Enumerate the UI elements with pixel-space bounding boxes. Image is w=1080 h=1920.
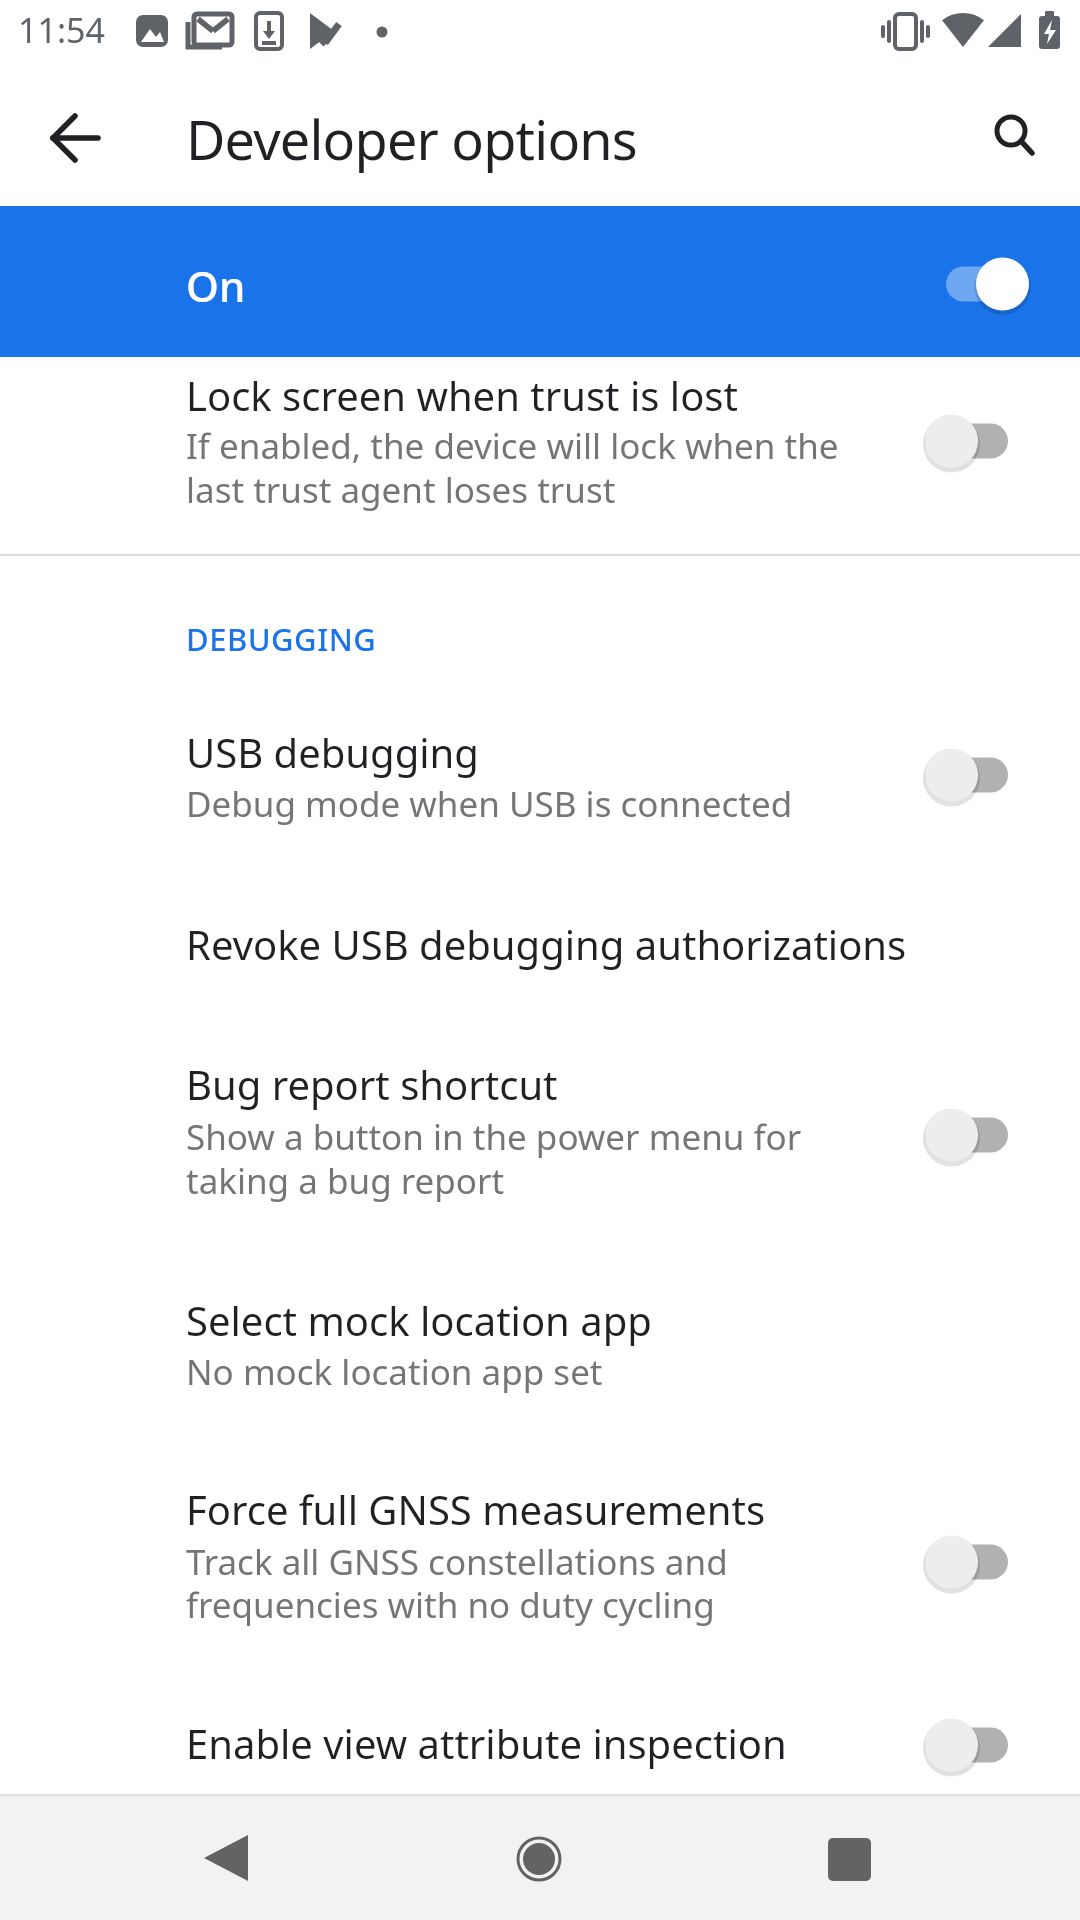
staticText: If enabled, the device will lock when th… — [186, 422, 839, 470]
button[interactable] — [0, 1270, 1080, 1420]
staticText: Revoke USB debugging authorizations — [186, 917, 907, 971]
staticText: No mock location app set — [186, 1348, 603, 1396]
staticText: Show a button in the power menu for — [186, 1113, 802, 1161]
staticText: DEBUGGING — [186, 618, 377, 660]
staticText: last trust agent loses trust — [186, 466, 616, 514]
staticText: 11:54 — [18, 7, 105, 53]
staticText: Select mock location app — [186, 1293, 652, 1347]
staticText: Force full GNSS measurements — [186, 1482, 766, 1536]
staticText: frequencies with no duty cycling — [186, 1581, 715, 1629]
button[interactable] — [985, 105, 1045, 165]
staticText: Track all GNSS constellations and — [186, 1538, 728, 1586]
button[interactable] — [190, 1822, 262, 1894]
button[interactable] — [0, 1460, 1080, 1650]
button[interactable] — [0, 880, 1080, 1015]
button[interactable] — [503, 1823, 575, 1895]
button[interactable] — [813, 1823, 885, 1895]
staticText: Lock screen when trust is lost — [186, 368, 738, 422]
staticText: Enable view attribute inspection — [186, 1716, 787, 1770]
button[interactable] — [0, 700, 1080, 860]
staticText: Bug report shortcut — [186, 1057, 558, 1111]
staticText: Debug mode when USB is connected — [186, 780, 793, 828]
staticText: Developer options — [186, 102, 637, 176]
staticText: On — [186, 257, 246, 314]
button[interactable] — [48, 110, 104, 166]
button[interactable] — [0, 206, 1080, 357]
staticText: USB debugging — [186, 725, 479, 779]
button[interactable] — [0, 357, 1080, 554]
button[interactable] — [0, 1040, 1080, 1230]
staticText: taking a bug report — [186, 1157, 505, 1205]
button[interactable] — [0, 1680, 1080, 1794]
